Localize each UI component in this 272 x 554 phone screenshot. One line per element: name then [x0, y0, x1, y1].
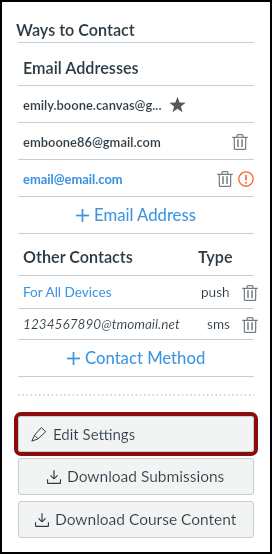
- button[interactable]: emboone86@gmail.com: [2, 123, 270, 159]
- staticText: Ways to Contact: [16, 20, 135, 39]
- button[interactable]: Delete: [231, 133, 248, 150]
- button[interactable]: Download Submissions: [18, 458, 254, 495]
- staticText: Other Contacts: [23, 247, 133, 266]
- button[interactable]: Delete: [216, 170, 233, 187]
- staticText: push: [201, 284, 230, 300]
- staticText: Type: [198, 247, 233, 266]
- button[interactable]: Unconfirmed email: [237, 170, 254, 187]
- staticText: 1234567890@tmomail.net: [23, 316, 180, 332]
- button[interactable]: email@email.com: [2, 160, 270, 196]
- button[interactable]: For All Devices: [2, 276, 270, 308]
- staticText: Download Course Content: [55, 510, 237, 529]
- button[interactable]: 1234567890@tmomail.net: [2, 309, 270, 339]
- button[interactable]: Email Address: [2, 197, 270, 233]
- staticText: emboone86@gmail.com: [23, 134, 161, 149]
- staticText: Edit Settings: [53, 425, 136, 443]
- staticText: Email Address: [94, 205, 196, 225]
- staticText: Contact Method: [85, 348, 206, 368]
- staticText: For All Devices: [23, 284, 112, 300]
- button[interactable]: Delete: [241, 316, 258, 333]
- staticText: emily.boone.canvas@g...: [23, 97, 169, 112]
- staticText: sms: [207, 316, 230, 332]
- button[interactable]: emily.boone.canvas@g...: [2, 86, 270, 122]
- button[interactable]: Contact Method: [2, 340, 270, 376]
- button[interactable]: Edit Settings: [18, 416, 254, 452]
- staticText: Download Submissions: [67, 467, 225, 486]
- button[interactable]: Delete: [241, 284, 258, 301]
- staticText: email@email.com: [23, 171, 123, 186]
- button[interactable]: Download Course Content: [18, 501, 254, 538]
- other: Default email address: [169, 96, 186, 113]
- staticText: Email Addresses: [23, 58, 139, 77]
